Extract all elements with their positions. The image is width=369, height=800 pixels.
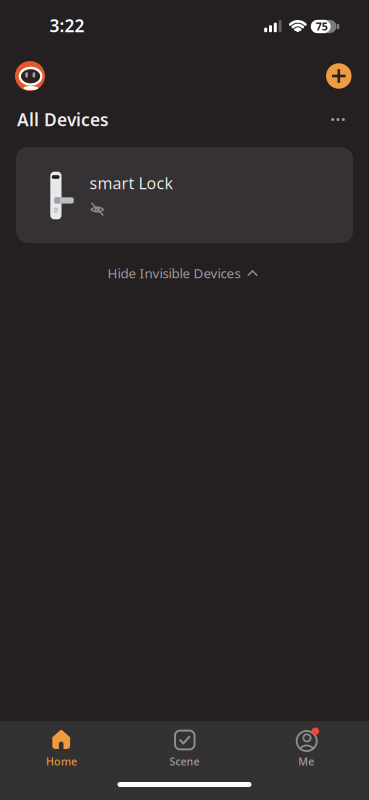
- button[interactable]: Me: [246, 721, 369, 800]
- staticText: Scene: [169, 754, 199, 768]
- staticText: Home: [46, 754, 77, 768]
- button[interactable]: Add Device: [326, 63, 352, 89]
- button[interactable]: Hide Invisible Devices: [107, 264, 257, 282]
- button[interactable]: Scene: [123, 721, 246, 800]
- staticText: All Devices: [17, 108, 109, 131]
- staticText: Me: [298, 754, 314, 768]
- button[interactable]: Home: [0, 721, 123, 800]
- staticText: 75: [316, 19, 328, 33]
- button[interactable]: smart Lock: [16, 147, 353, 243]
- staticText: Hide Invisible Devices: [107, 264, 240, 282]
- button[interactable]: More: [326, 107, 350, 131]
- staticText: 3:22: [49, 14, 84, 37]
- button[interactable]: Assistant: [15, 61, 45, 91]
- staticText: smart Lock: [89, 172, 173, 194]
